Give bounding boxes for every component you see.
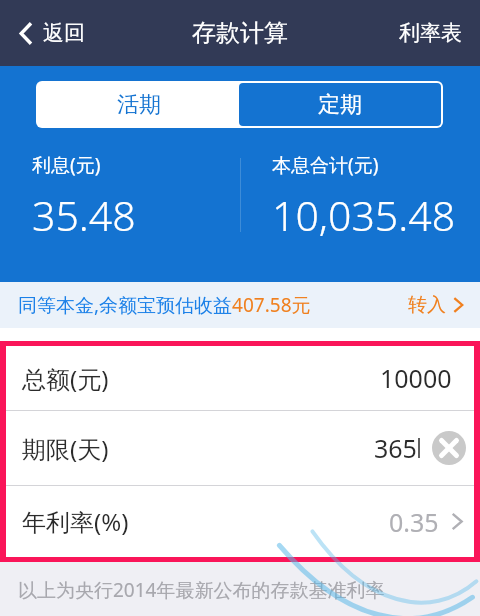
- button[interactable]: 返回: [12, 12, 91, 54]
- staticText: 35.48: [32, 187, 136, 243]
- staticText: 10000: [380, 361, 452, 395]
- staticText: 本息合计(元): [272, 152, 379, 178]
- staticText: 年利率(%): [22, 505, 129, 538]
- staticText: 期限(天): [22, 432, 109, 465]
- staticText: 总额(元): [22, 362, 109, 395]
- button[interactable]: 定期: [239, 83, 441, 126]
- staticText: 同等本金,余额宝预估收益407.58元: [18, 292, 311, 318]
- staticText: 365: [374, 431, 417, 465]
- staticText: 利率表: [399, 20, 462, 46]
- staticText: 定期: [318, 91, 362, 119]
- button[interactable]: 清除: [432, 431, 466, 465]
- button[interactable]: 期限(天): [6, 411, 474, 485]
- staticText: 活期: [117, 91, 161, 119]
- button[interactable]: 年利率(%): [6, 486, 474, 557]
- staticText: 存款计算: [192, 18, 288, 48]
- button[interactable]: 总额(元): [6, 346, 474, 410]
- staticText: 利息(元): [32, 152, 101, 178]
- button[interactable]: 利率表: [389, 10, 472, 56]
- button[interactable]: 活期: [38, 83, 239, 126]
- staticText: 0.35: [389, 505, 439, 539]
- staticText: 转入: [408, 293, 446, 317]
- staticText: 10,035.48: [272, 187, 456, 243]
- staticText: 以上为央行2014年最新公布的存款基准利率: [18, 577, 385, 603]
- button[interactable]: 同等本金,余额宝预估收益407.58元: [0, 282, 480, 328]
- staticText: 返回: [43, 20, 85, 46]
